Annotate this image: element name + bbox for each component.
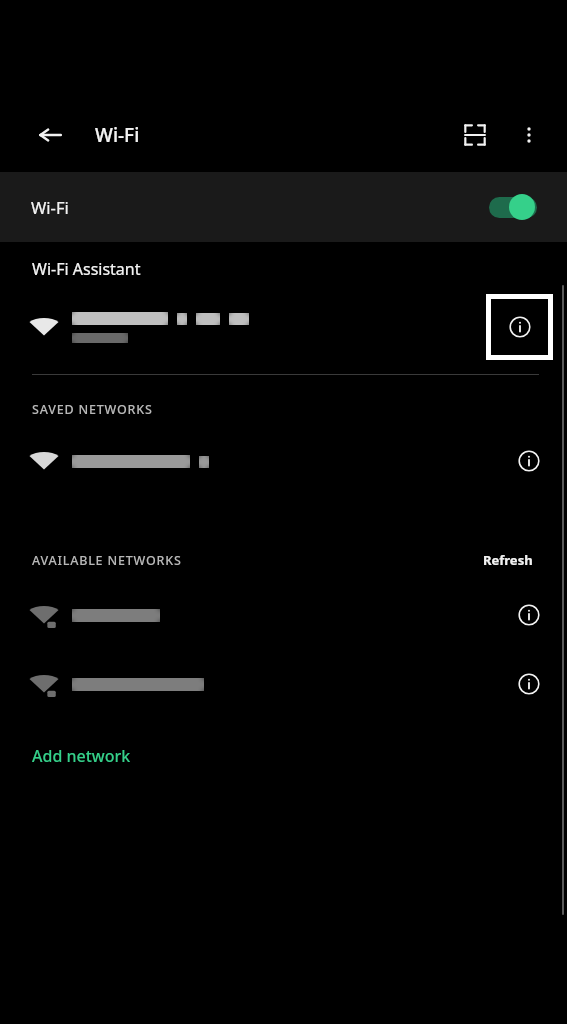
button[interactable]: Available network details [0, 588, 567, 642]
button[interactable]: Available network details [505, 660, 553, 708]
button[interactable]: More options [507, 113, 551, 157]
staticText: Add network [32, 745, 131, 767]
staticText: Wi-Fi Assistant [32, 258, 141, 280]
button[interactable]: Scan QR code [453, 113, 497, 157]
button[interactable]: Saved network details [0, 434, 567, 488]
button[interactable]: Add network [20, 739, 143, 773]
button[interactable]: Wi-Fi on [487, 192, 539, 222]
button[interactable]: Network details [491, 299, 548, 355]
staticText: Wi-Fi [95, 122, 140, 148]
button[interactable]: Wi-Fi [0, 172, 567, 242]
staticText: Refresh [483, 551, 533, 569]
staticText: AVAILABLE NETWORKS [32, 552, 182, 569]
button[interactable]: Back [30, 115, 70, 155]
staticText: Wi-Fi [31, 196, 69, 218]
button[interactable]: Saved network details [505, 437, 553, 485]
button[interactable]: Refresh [479, 548, 537, 572]
staticText: SAVED NETWORKS [32, 401, 153, 418]
button[interactable]: Available network details [0, 657, 567, 711]
button[interactable]: Available network details [505, 591, 553, 639]
button[interactable]: Network details [0, 294, 567, 360]
